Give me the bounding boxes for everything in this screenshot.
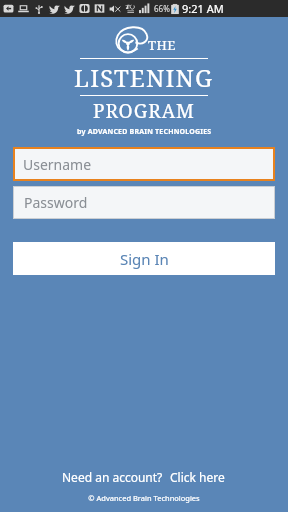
staticText: Need an account? <box>62 469 163 485</box>
button[interactable]: Username <box>13 147 275 181</box>
staticText: by ADVANCED BRAIN TECHNOLOGIES <box>77 127 212 137</box>
staticText: Username <box>23 155 92 174</box>
button[interactable]: Password <box>13 186 275 219</box>
button[interactable]: Click here <box>169 467 226 487</box>
staticText: Click here <box>170 469 225 485</box>
staticText: © Advanced Brain Technologies <box>0 493 288 503</box>
staticText: PROGRAM <box>93 98 195 124</box>
staticText: 9:21 AM <box>182 1 224 16</box>
staticText: THE <box>148 36 176 54</box>
staticText: Sign In <box>120 249 169 269</box>
staticText: LISTENING <box>74 61 214 94</box>
button[interactable]: Sign In <box>13 242 275 275</box>
staticText: Password <box>24 193 88 212</box>
other: The Listening Program logo <box>113 26 147 56</box>
staticText: 66% <box>154 3 170 14</box>
